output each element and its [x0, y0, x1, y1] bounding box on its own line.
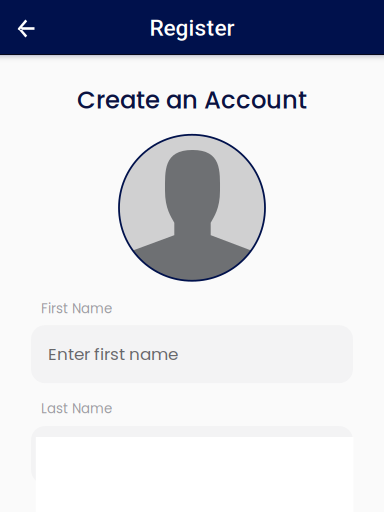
staticText: First Name: [41, 299, 112, 318]
button[interactable]: Enter first name: [31, 325, 353, 383]
button[interactable]: [31, 426, 353, 484]
staticText: Enter first name: [48, 342, 178, 366]
button[interactable]: Back: [4, 5, 48, 49]
staticText: Last Name: [41, 399, 112, 418]
staticText: Create an Account: [77, 83, 307, 117]
button[interactable]: Choose profile photo: [119, 135, 265, 281]
staticText: Register: [149, 15, 234, 41]
